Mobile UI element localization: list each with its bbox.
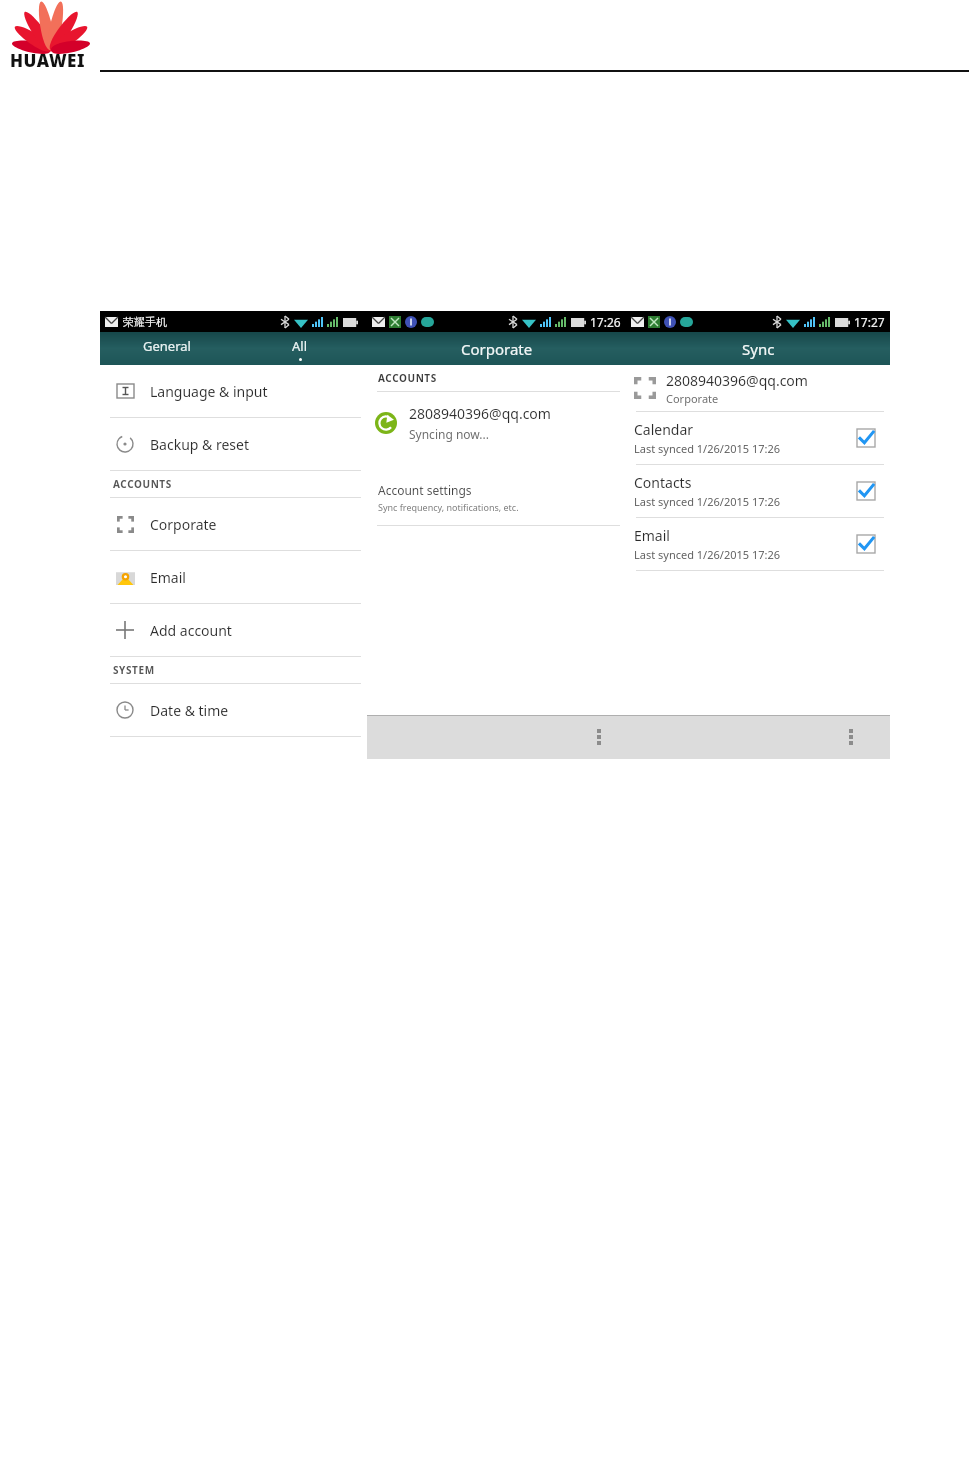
staticText: HUAWEI <box>10 49 85 72</box>
staticText: Last synced 1/26/2015 17:26 <box>634 547 781 562</box>
button[interactable]: 2808940396@qq.com <box>626 365 890 411</box>
staticText: Sync frequency, notifications, etc. <box>378 501 519 513</box>
staticText: Date & time <box>150 701 229 720</box>
staticText: ACCOUNTS <box>113 477 172 491</box>
staticText: Corporate <box>150 515 217 534</box>
staticText: Backup & reset <box>150 435 249 454</box>
staticText: Email <box>634 526 670 545</box>
button[interactable]: More options <box>834 720 868 754</box>
staticText: 2808940396@qq.com <box>666 371 808 390</box>
staticText: Last synced 1/26/2015 17:26 <box>634 441 781 456</box>
other: Sync enabled <box>856 481 876 501</box>
staticText: Sync <box>742 339 775 359</box>
button[interactable]: Corporate <box>100 498 367 550</box>
staticText: Corporate <box>461 339 533 359</box>
staticText: Language & input <box>150 382 268 401</box>
button[interactable]: Language & input <box>100 365 367 417</box>
staticText: Last synced 1/26/2015 17:26 <box>634 494 781 509</box>
staticText: Syncing now... <box>409 426 489 442</box>
button[interactable]: Calendar <box>626 412 890 464</box>
button[interactable]: Account settings <box>367 482 626 513</box>
staticText: General <box>143 337 191 355</box>
staticText: Calendar <box>634 420 694 439</box>
button[interactable]: Email <box>626 518 890 570</box>
staticText: SYSTEM <box>113 663 155 677</box>
button[interactable]: Contacts <box>626 465 890 517</box>
button[interactable]: General <box>100 332 233 365</box>
staticText: 荣耀手机 <box>123 315 167 329</box>
button[interactable]: Add account <box>100 604 367 656</box>
staticText: Contacts <box>634 473 692 492</box>
button[interactable]: Date & time <box>100 684 367 736</box>
other: Sync enabled <box>856 428 876 448</box>
other: Sync enabled <box>856 534 876 554</box>
button[interactable]: Email <box>100 551 367 603</box>
staticText: All <box>292 337 308 355</box>
staticText: Add account <box>150 621 232 640</box>
button[interactable]: More options <box>582 720 616 754</box>
staticText: ACCOUNTS <box>378 371 437 385</box>
button[interactable]: Backup & reset <box>100 418 367 470</box>
staticText: Email <box>150 568 186 587</box>
staticText: Account settings <box>378 482 472 498</box>
staticText: Corporate <box>666 391 719 406</box>
staticText: 2808940396@qq.com <box>409 404 551 423</box>
staticText: 17:27 <box>854 314 885 330</box>
button[interactable]: All <box>233 332 367 365</box>
button[interactable]: 2808940396@qq.com <box>367 392 626 454</box>
staticText: 17:26 <box>590 314 621 330</box>
